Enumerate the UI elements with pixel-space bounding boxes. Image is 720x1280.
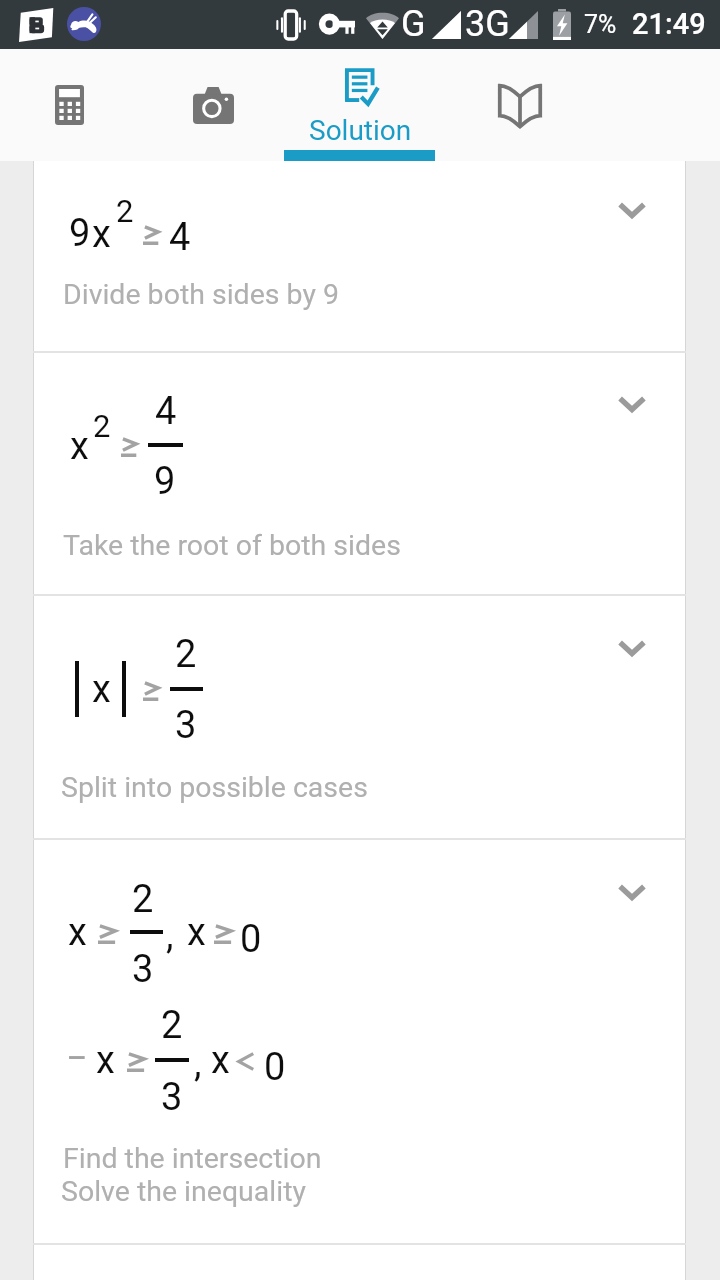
button[interactable]: Calculator [0,49,138,161]
staticText: 3 [161,1075,183,1120]
staticText: Divide both sides by 9 [63,278,339,311]
staticText: 9 [69,211,91,256]
button[interactable]: Solution [284,49,435,161]
staticText: x [96,1038,115,1083]
button[interactable]: Step: x squared is greater than or equal… [33,353,686,594]
staticText: 4 [169,215,191,260]
other: Solution [342,65,383,108]
button[interactable]: Expand step [601,184,663,236]
staticText: 2 [161,1003,183,1048]
staticText: , [166,913,174,958]
button[interactable]: Step: 9x squared is greater than or equa… [33,161,686,351]
staticText: 2 [93,408,111,444]
staticText: − [66,1036,88,1081]
button[interactable]: Dictionary [440,49,600,161]
button[interactable]: Camera [138,49,288,161]
staticText: Find the intersection [63,1142,322,1175]
staticText: Solution [309,114,412,147]
staticText: Solve the inequality [61,1175,306,1208]
button[interactable]: Step: absolute value of x is greater tha… [33,596,686,838]
staticText: 7% [584,10,617,39]
staticText: 9 [154,459,176,504]
staticText: 3 [132,947,154,992]
staticText: G [401,3,426,45]
staticText: x [70,424,89,469]
other: Dictionary [498,83,542,127]
other: Calculator [55,85,84,125]
staticText: x [92,667,111,712]
staticText: 4 [155,389,177,434]
staticText: x [211,1038,230,1083]
staticText: Take the root of both sides [63,529,401,562]
staticText: 3 [175,703,197,748]
staticText: 0 [240,917,262,962]
staticText: Split into possible cases [61,771,368,804]
button[interactable]: Expand step [601,378,663,430]
staticText: 21:49 [632,7,706,41]
button[interactable]: Step: x is greater than or equal to 2 ov… [33,840,686,1243]
staticText: 2 [116,193,134,229]
button[interactable]: Expand step [601,866,663,918]
staticText: x [68,910,87,955]
button[interactable]: Expand step [601,622,663,674]
staticText: x [92,212,111,257]
staticText: 2 [132,877,154,922]
staticText: 0 [264,1045,286,1090]
other: Camera [193,87,234,124]
staticText: 2 [175,632,197,677]
staticText: 3G [465,3,510,45]
staticText: x [187,910,206,955]
staticText: , [194,1041,202,1086]
